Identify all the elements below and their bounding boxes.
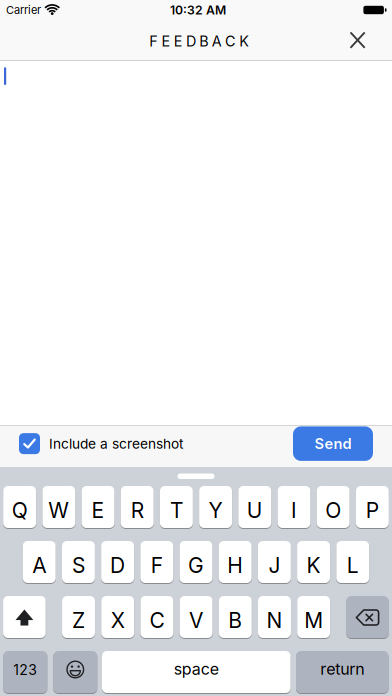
staticText: N bbox=[266, 608, 282, 633]
button[interactable]: Y bbox=[199, 486, 232, 528]
staticText: Include a screenshot bbox=[49, 435, 183, 452]
staticText: F bbox=[149, 32, 158, 50]
button[interactable]: H bbox=[219, 541, 252, 583]
button[interactable]: R bbox=[121, 486, 154, 528]
button[interactable]: Close bbox=[340, 22, 375, 58]
button[interactable]: L bbox=[336, 541, 369, 583]
staticText: space bbox=[174, 659, 219, 679]
staticText: F bbox=[151, 553, 163, 578]
button[interactable]: D bbox=[101, 541, 134, 583]
button[interactable]: C bbox=[140, 596, 173, 638]
button[interactable]: Send bbox=[293, 426, 373, 461]
staticText: P bbox=[366, 498, 379, 523]
button[interactable]: J bbox=[258, 541, 291, 583]
button[interactable]: E bbox=[82, 486, 114, 528]
button[interactable]: Z bbox=[62, 596, 95, 638]
staticText: Q bbox=[12, 498, 28, 523]
button[interactable]: Delete bbox=[346, 596, 388, 638]
staticText: K bbox=[239, 32, 249, 50]
button[interactable]: Q bbox=[3, 486, 36, 528]
staticText: I bbox=[291, 498, 297, 523]
staticText: K bbox=[307, 553, 321, 578]
staticText: E bbox=[91, 498, 104, 523]
button[interactable]: V bbox=[180, 596, 212, 638]
staticText: Y bbox=[209, 498, 223, 523]
button[interactable]: X bbox=[101, 596, 134, 638]
staticText: A bbox=[32, 553, 46, 578]
button[interactable]: S bbox=[62, 541, 95, 583]
staticText: return bbox=[320, 659, 364, 679]
button[interactable]: return bbox=[296, 651, 388, 693]
button[interactable]: N bbox=[258, 596, 291, 638]
staticText: W bbox=[48, 498, 69, 523]
staticText: 10:32 AM bbox=[170, 3, 226, 17]
staticText: B bbox=[199, 32, 208, 50]
staticText: L bbox=[347, 553, 359, 578]
button[interactable]: U bbox=[238, 486, 271, 528]
staticText: E bbox=[174, 32, 183, 50]
staticText: Send bbox=[314, 435, 351, 453]
staticText: A bbox=[212, 32, 222, 50]
button[interactable]: M bbox=[297, 596, 330, 638]
staticText: 123 bbox=[13, 661, 37, 678]
button[interactable]: A bbox=[23, 541, 56, 583]
button[interactable]: O bbox=[317, 486, 350, 528]
staticText: E bbox=[161, 32, 170, 50]
staticText: V bbox=[189, 608, 203, 633]
staticText: U bbox=[247, 498, 263, 523]
staticText: C bbox=[149, 608, 164, 633]
button[interactable]: I bbox=[277, 486, 310, 528]
staticText: D bbox=[110, 553, 125, 578]
staticText: J bbox=[268, 553, 280, 578]
button[interactable]: P bbox=[356, 486, 389, 528]
button[interactable]: T bbox=[160, 486, 193, 528]
button[interactable]: Shift bbox=[3, 596, 46, 638]
staticText: D bbox=[186, 32, 196, 50]
staticText: S bbox=[72, 553, 85, 578]
button[interactable]: Numbers bbox=[3, 651, 47, 693]
staticText: X bbox=[111, 608, 125, 633]
staticText: R bbox=[131, 498, 144, 523]
staticText: B bbox=[228, 608, 242, 633]
button[interactable]: Include a screenshot bbox=[19, 433, 183, 454]
button[interactable]: G bbox=[179, 541, 212, 583]
button[interactable]: space bbox=[102, 651, 291, 693]
staticText: G bbox=[188, 553, 204, 578]
staticText: Carrier bbox=[6, 3, 41, 17]
staticText: H bbox=[227, 553, 243, 578]
button[interactable]: W bbox=[42, 486, 75, 528]
staticText: C bbox=[225, 32, 236, 50]
staticText: Z bbox=[72, 608, 85, 633]
button[interactable]: B bbox=[219, 596, 252, 638]
button[interactable]: K bbox=[297, 541, 330, 583]
staticText: T bbox=[170, 498, 183, 523]
staticText: M bbox=[304, 608, 323, 633]
button[interactable]: Emoji bbox=[53, 651, 97, 693]
staticText: O bbox=[325, 498, 341, 523]
button[interactable]: F bbox=[140, 541, 173, 583]
